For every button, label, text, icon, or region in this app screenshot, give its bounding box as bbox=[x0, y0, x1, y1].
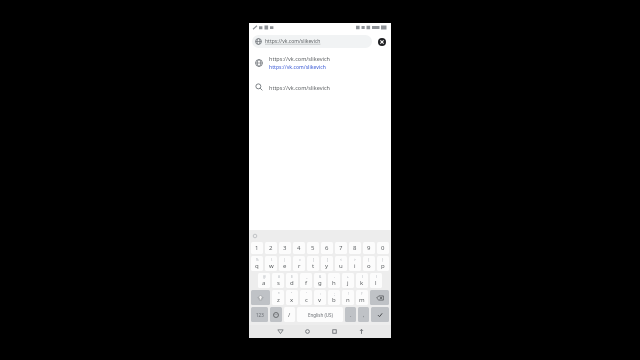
button[interactable]: 5 bbox=[307, 242, 319, 254]
staticText: = bbox=[299, 258, 301, 262]
button[interactable]: : bbox=[314, 290, 326, 305]
button[interactable]: { bbox=[363, 256, 375, 271]
staticText: a bbox=[262, 279, 266, 287]
staticText: n bbox=[346, 296, 350, 304]
staticText: & bbox=[319, 275, 322, 279]
staticText: j bbox=[347, 279, 349, 287]
button[interactable]: Backspace bbox=[370, 290, 389, 305]
button[interactable]: * bbox=[272, 290, 284, 305]
staticText: l bbox=[375, 279, 377, 287]
button[interactable]: Clear text bbox=[375, 35, 388, 48]
staticText: v bbox=[318, 296, 322, 304]
staticText: ) bbox=[376, 275, 377, 279]
button[interactable]: https://vk.com/slikevich bbox=[252, 35, 372, 48]
staticText: https://vk.com/slikevich bbox=[269, 64, 326, 71]
staticText: z bbox=[277, 296, 280, 304]
button[interactable]: ) bbox=[370, 273, 382, 288]
button[interactable]: > bbox=[349, 256, 361, 271]
button[interactable]: 8 bbox=[349, 242, 361, 254]
button[interactable]: ? bbox=[356, 290, 368, 305]
button[interactable]: Shift bbox=[251, 290, 270, 305]
button[interactable]: 9 bbox=[363, 242, 375, 254]
button[interactable]: < bbox=[335, 256, 347, 271]
button[interactable]: } bbox=[377, 256, 389, 271]
button[interactable]: Symbols bbox=[251, 307, 268, 322]
staticText: ( bbox=[362, 275, 363, 279]
staticText: % bbox=[256, 258, 259, 262]
staticText: 8 bbox=[353, 244, 357, 252]
button[interactable]: ' bbox=[300, 290, 312, 305]
staticText: d bbox=[290, 279, 294, 287]
staticText: https://vk.com/slikevich bbox=[269, 55, 330, 62]
staticText: 7 bbox=[339, 244, 343, 252]
button[interactable]: | bbox=[279, 256, 291, 271]
staticText: { bbox=[368, 258, 370, 262]
button[interactable]: Comma bbox=[358, 307, 369, 322]
staticText: c bbox=[305, 296, 308, 304]
button[interactable]: ] bbox=[321, 256, 333, 271]
staticText: t bbox=[312, 262, 315, 270]
staticText: | bbox=[284, 258, 286, 262]
staticText: s bbox=[277, 279, 280, 287]
button[interactable]: + bbox=[342, 273, 354, 288]
button[interactable]: 7 bbox=[335, 242, 347, 254]
button[interactable]: 3 bbox=[279, 242, 291, 254]
staticText: m bbox=[359, 296, 365, 304]
button[interactable]: ! bbox=[342, 290, 354, 305]
staticText: : bbox=[320, 292, 321, 296]
button[interactable]: " bbox=[286, 290, 298, 305]
button[interactable]: ( bbox=[356, 273, 368, 288]
button[interactable]: Go bbox=[371, 307, 389, 322]
button[interactable]: Hide keyboard bbox=[348, 325, 375, 338]
button[interactable]: https://vk.com/slikevich bbox=[249, 50, 391, 76]
button[interactable]: % bbox=[251, 256, 263, 271]
button[interactable]: # bbox=[272, 273, 284, 288]
button[interactable]: Period bbox=[345, 307, 356, 322]
staticText: 6 bbox=[325, 244, 329, 252]
staticText: https://vk.com/slikevich bbox=[265, 38, 321, 45]
staticText: 1 bbox=[255, 244, 259, 252]
staticText: / bbox=[288, 311, 291, 319]
staticText: 9 bbox=[367, 244, 371, 252]
button[interactable]: Emoji bbox=[270, 307, 282, 322]
staticText: 2 bbox=[269, 244, 273, 252]
staticText: e bbox=[283, 262, 287, 270]
staticText: + bbox=[347, 275, 349, 279]
staticText: ! bbox=[348, 292, 349, 296]
button[interactable]: @ bbox=[258, 273, 270, 288]
button[interactable]: \ bbox=[265, 256, 277, 271]
button[interactable]: = bbox=[293, 256, 305, 271]
staticText: , bbox=[363, 311, 365, 318]
button[interactable]: 6 bbox=[321, 242, 333, 254]
staticText: \ bbox=[271, 258, 273, 262]
button[interactable]: Home bbox=[294, 325, 321, 338]
staticText: https://vk.com/slikevich bbox=[269, 84, 330, 91]
staticText: 0 bbox=[381, 244, 385, 252]
staticText: ; bbox=[334, 292, 335, 296]
button[interactable]: 2 bbox=[265, 242, 277, 254]
button[interactable]: & bbox=[314, 273, 326, 288]
button[interactable]: 4 bbox=[293, 242, 305, 254]
button[interactable]: - bbox=[328, 273, 340, 288]
staticText: y bbox=[325, 262, 329, 270]
button[interactable]: [ bbox=[307, 256, 319, 271]
staticText: } bbox=[382, 258, 384, 262]
button[interactable]: 1 bbox=[251, 242, 263, 254]
staticText: k bbox=[360, 279, 364, 287]
button[interactable]: ; bbox=[328, 290, 340, 305]
button[interactable]: Back bbox=[266, 325, 294, 338]
button[interactable]: Recents bbox=[321, 325, 348, 338]
button[interactable]: _ bbox=[300, 273, 312, 288]
button[interactable]: https://vk.com/slikevich bbox=[249, 76, 391, 98]
staticText: i bbox=[354, 262, 356, 270]
staticText: u bbox=[339, 262, 343, 270]
button[interactable]: / bbox=[284, 307, 295, 322]
staticText: b bbox=[332, 296, 336, 304]
staticText: > bbox=[354, 258, 356, 262]
staticText: @ bbox=[263, 275, 266, 279]
button[interactable]: 0 bbox=[377, 242, 389, 254]
button[interactable]: $ bbox=[286, 273, 298, 288]
button[interactable]: English (US) bbox=[297, 307, 343, 322]
